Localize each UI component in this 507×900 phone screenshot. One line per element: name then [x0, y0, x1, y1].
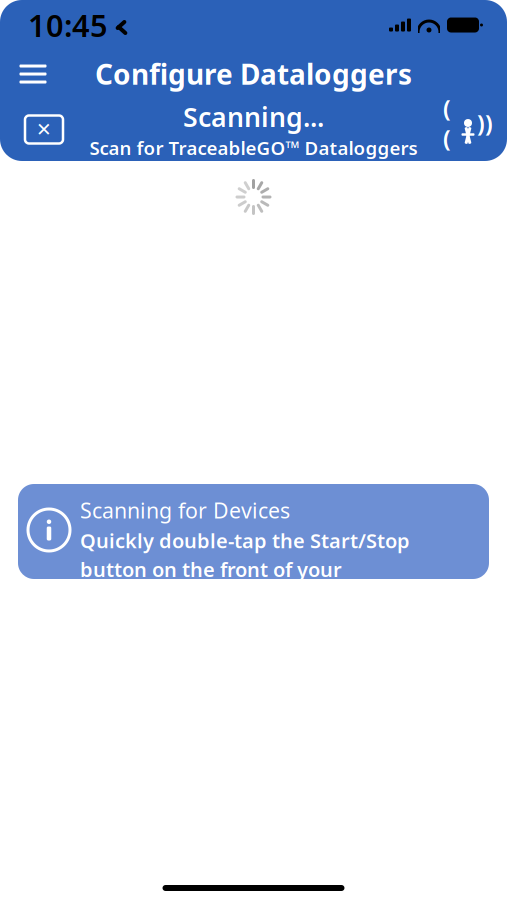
staticText: (( — [443, 93, 451, 154]
staticText: Scanning... — [183, 99, 324, 134]
staticText: Quickly double-tap the Start/Stop button… — [80, 527, 445, 639]
staticText: Configure Dataloggers — [95, 55, 412, 93]
staticText: Scan for TraceableGO™ Dataloggers — [89, 135, 417, 160]
staticText: ✕ — [36, 119, 52, 140]
staticText: 10:45 — [28, 5, 108, 45]
button[interactable]: Menu — [10, 53, 56, 95]
staticText: Scanning for Devices — [80, 496, 290, 524]
button[interactable]: Scan for devices — [443, 107, 493, 151]
button[interactable]: Close — [20, 109, 68, 149]
staticText: )) — [477, 108, 493, 138]
